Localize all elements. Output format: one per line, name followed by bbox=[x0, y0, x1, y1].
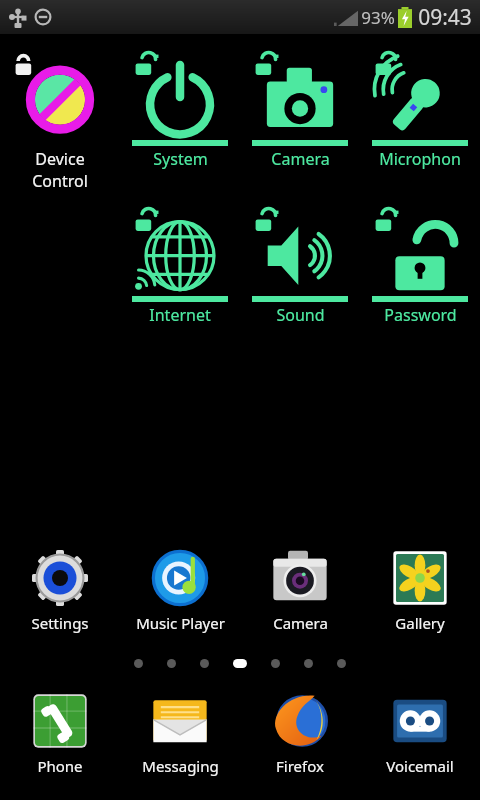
staticText: Settings bbox=[31, 613, 89, 633]
button[interactable]: Camera bbox=[240, 44, 360, 170]
staticText: System bbox=[153, 148, 208, 170]
staticText: Device Control bbox=[32, 148, 88, 192]
button[interactable]: Page 6 bbox=[304, 659, 313, 668]
staticText: Messaging bbox=[142, 756, 219, 776]
button[interactable]: Page 3 bbox=[200, 659, 209, 668]
button[interactable]: Page 1 bbox=[134, 659, 143, 668]
button[interactable]: Page 5 bbox=[271, 659, 280, 668]
staticText: Microphon bbox=[379, 148, 461, 170]
button[interactable]: Firefox bbox=[240, 690, 360, 776]
button[interactable]: Settings bbox=[0, 547, 120, 633]
button[interactable]: Password bbox=[360, 200, 480, 326]
button[interactable]: Internet bbox=[120, 200, 240, 326]
staticText: 09:43 bbox=[418, 3, 472, 32]
button[interactable]: Phone bbox=[0, 690, 120, 776]
staticText: Firefox bbox=[276, 756, 324, 776]
staticText: Phone bbox=[37, 756, 83, 776]
button[interactable]: Voicemail bbox=[360, 690, 480, 776]
button[interactable]: Messaging bbox=[120, 690, 240, 776]
button[interactable]: Gallery bbox=[360, 547, 480, 633]
button[interactable]: Camera bbox=[240, 547, 360, 633]
staticText: Voicemail bbox=[386, 756, 454, 776]
button[interactable]: Microphone bbox=[360, 44, 480, 170]
button[interactable]: Sound bbox=[240, 200, 360, 326]
staticText: Gallery bbox=[395, 613, 445, 633]
button[interactable]: Page 7 bbox=[337, 659, 346, 668]
button[interactable]: Music Player bbox=[120, 547, 240, 633]
button[interactable]: Page 4 bbox=[233, 659, 247, 668]
staticText: 93% bbox=[361, 6, 395, 29]
staticText: Internet bbox=[149, 304, 211, 326]
button[interactable]: System bbox=[120, 44, 240, 170]
button[interactable]: Device Control bbox=[0, 44, 120, 192]
button[interactable]: Page 2 bbox=[167, 659, 176, 668]
staticText: Sound bbox=[276, 304, 325, 326]
staticText: Password bbox=[384, 304, 457, 326]
staticText: Camera bbox=[271, 148, 330, 170]
staticText: Camera bbox=[273, 613, 328, 633]
staticText: Music Player bbox=[136, 613, 225, 633]
